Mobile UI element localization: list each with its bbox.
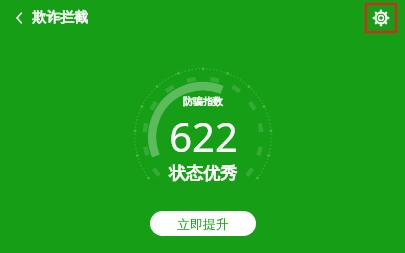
- button[interactable]: Settings: [366, 4, 396, 32]
- staticText: 立即提升: [177, 216, 229, 232]
- staticText: 622: [169, 109, 238, 163]
- button[interactable]: 立即提升: [150, 211, 256, 236]
- staticText: 欺诈拦截: [32, 9, 88, 27]
- button[interactable]: Back: [8, 6, 32, 30]
- staticText: 防骗指数: [183, 95, 223, 108]
- staticText: 状态优秀: [169, 163, 237, 184]
